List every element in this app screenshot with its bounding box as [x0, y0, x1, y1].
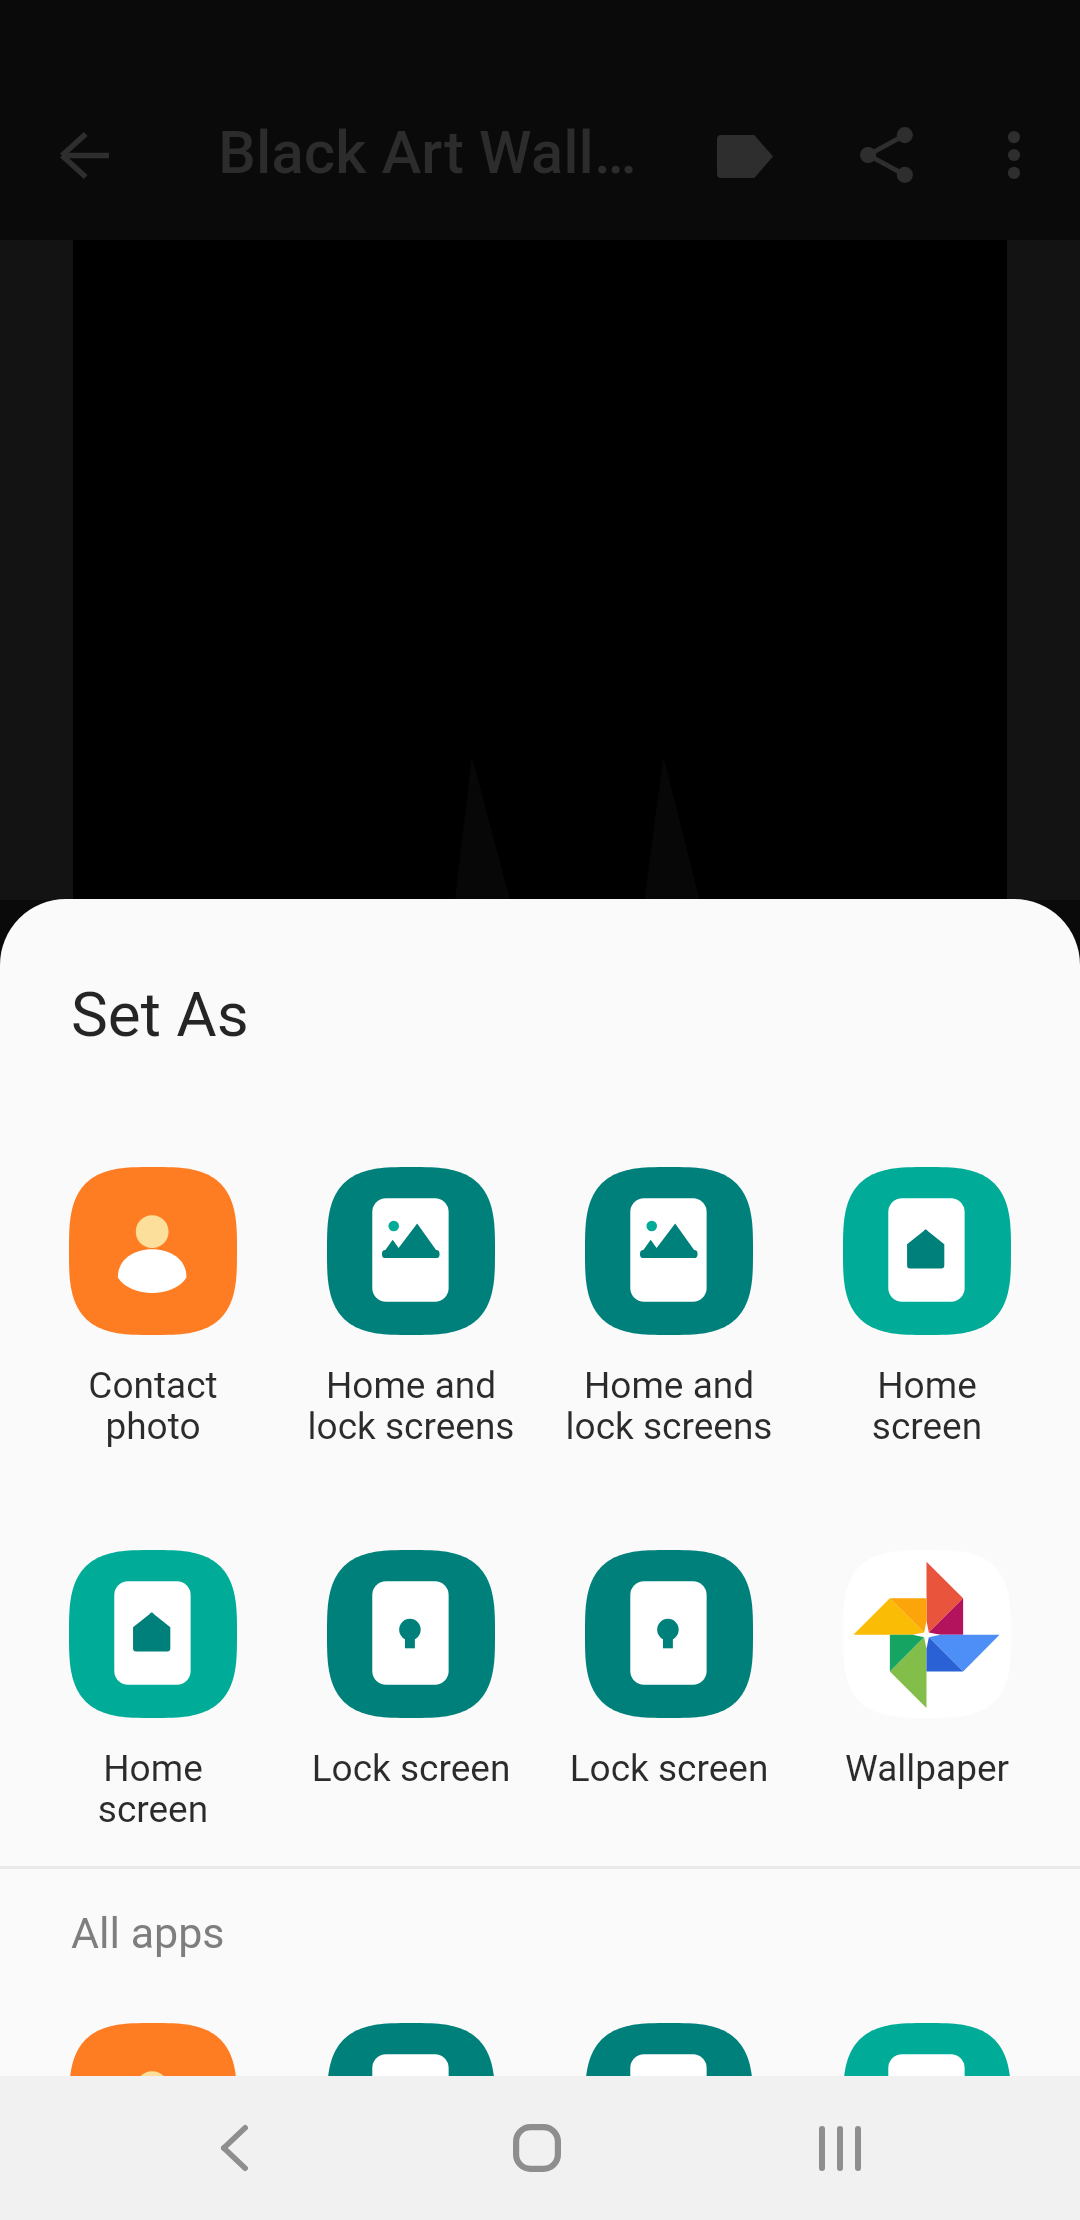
staticText: Contact photo	[24, 1364, 282, 1448]
staticText: Lock screen	[282, 1747, 540, 1790]
button[interactable]: Share	[828, 95, 948, 215]
staticText: Lock screen	[540, 1747, 798, 1790]
button[interactable]: More options	[954, 95, 1074, 215]
button[interactable]: Lock screen	[282, 1550, 540, 1790]
staticText: Home and lock screens	[282, 1364, 540, 1448]
button[interactable]: Home screen	[798, 1167, 1056, 1448]
button[interactable]: Contact photo	[24, 2023, 282, 2191]
staticText: Black Art Wall…	[218, 117, 637, 187]
button[interactable]: Wallpaper	[798, 1550, 1056, 1790]
button[interactable]: Tag	[685, 96, 805, 216]
button[interactable]: Home	[465, 2076, 609, 2220]
staticText: All apps	[71, 1908, 225, 1958]
button[interactable]: Back	[24, 95, 144, 215]
staticText: Home and lock screens	[540, 1364, 798, 1448]
button[interactable]: Home screen	[24, 1550, 282, 1831]
staticText: Set As	[71, 978, 249, 1051]
button[interactable]: Contact photo	[24, 1167, 282, 1448]
button[interactable]: Home and lock screens	[282, 1167, 540, 1448]
button[interactable]: Home and lock screens	[540, 1167, 798, 1448]
button[interactable]: Photos	[540, 2023, 798, 2191]
button[interactable]: Lock screen	[540, 1550, 798, 1790]
staticText: Wallpaper	[798, 1747, 1056, 1790]
button[interactable]: Home screen	[798, 2023, 1056, 2191]
staticText: Home screen	[24, 1747, 282, 1831]
button[interactable]: Recents	[768, 2076, 912, 2220]
button[interactable]: Gallery	[282, 2023, 540, 2191]
button[interactable]: Back	[162, 2076, 306, 2220]
staticText: Home screen	[798, 1364, 1056, 1448]
